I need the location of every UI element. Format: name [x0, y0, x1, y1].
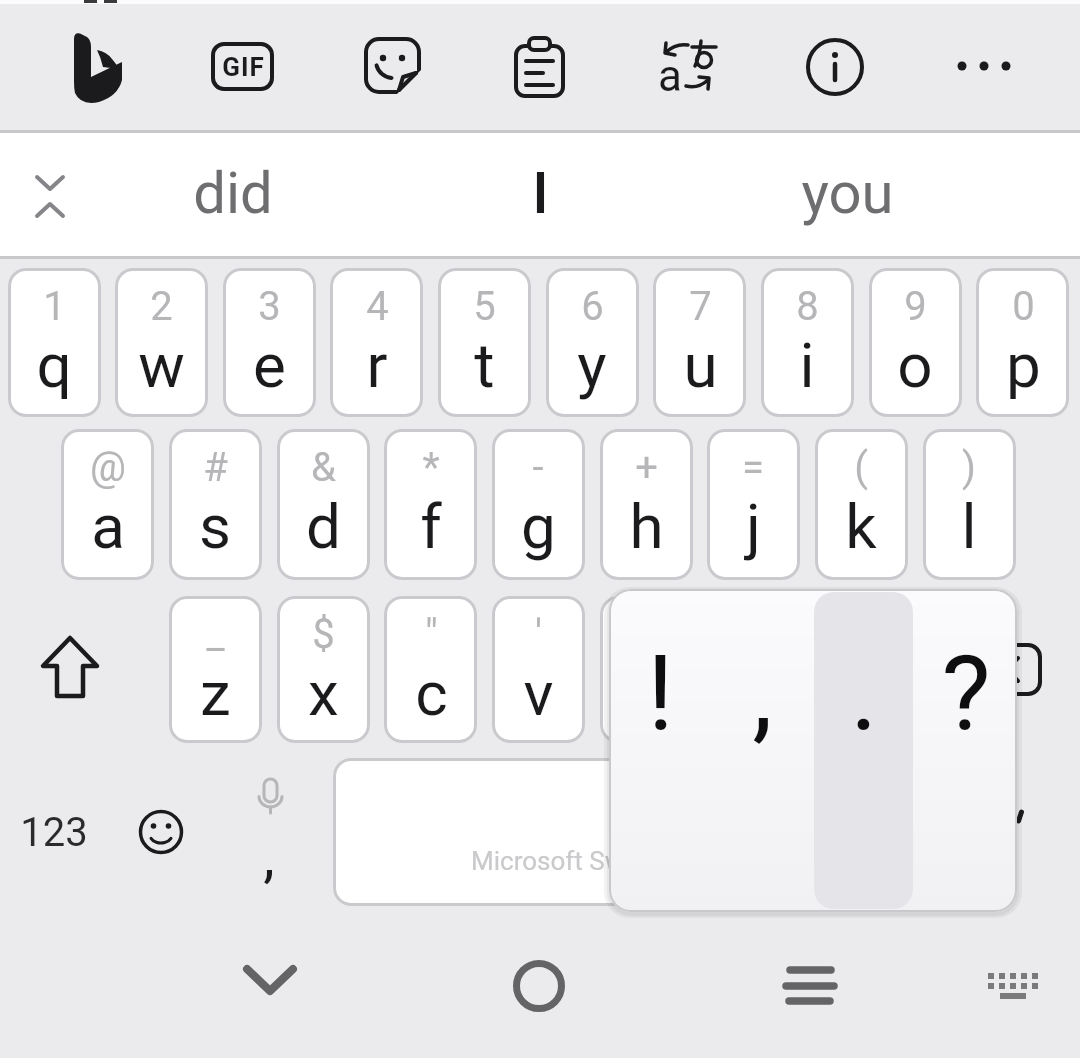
button[interactable]: [332, 14, 452, 120]
staticText: ): [962, 444, 976, 491]
button[interactable]: [185, 14, 305, 120]
staticText: =: [742, 444, 764, 491]
staticText: 3: [258, 283, 281, 330]
staticText: &: [311, 444, 336, 491]
staticText: *: [422, 444, 440, 491]
button[interactable]: [916, 592, 1016, 909]
staticText: 0: [1012, 283, 1035, 330]
staticText: @: [90, 444, 126, 491]
button[interactable]: [976, 268, 1069, 417]
staticText: ,: [752, 633, 773, 755]
button[interactable]: [480, 930, 600, 1042]
button[interactable]: [922, 14, 1042, 120]
staticText: $: [312, 611, 335, 658]
staticText: (: [854, 444, 868, 491]
button[interactable]: [169, 429, 262, 580]
staticText: s: [199, 490, 231, 563]
staticText: a: [658, 50, 682, 102]
button[interactable]: [492, 429, 585, 580]
staticText: +: [635, 444, 658, 491]
staticText: f: [420, 490, 442, 563]
staticText: -: [532, 444, 544, 491]
staticText: 5: [473, 283, 496, 330]
staticText: g: [521, 490, 556, 563]
staticText: j: [746, 490, 761, 563]
staticText: 123: [20, 809, 88, 856]
button[interactable]: [814, 592, 914, 909]
staticText: k: [845, 490, 877, 563]
button[interactable]: [775, 14, 895, 120]
staticText: 2: [150, 283, 173, 330]
button[interactable]: [869, 268, 962, 417]
staticText: u: [683, 329, 718, 402]
staticText: c: [415, 657, 448, 730]
button[interactable]: [223, 268, 316, 417]
button[interactable]: [115, 268, 208, 417]
staticText: w: [138, 329, 185, 402]
button[interactable]: [492, 596, 585, 743]
staticText: Microsoft SwiftKey: [471, 846, 691, 876]
button[interactable]: [110, 140, 360, 250]
staticText: y: [577, 329, 607, 402]
button[interactable]: [438, 268, 531, 417]
button[interactable]: [220, 758, 320, 906]
button[interactable]: [600, 429, 693, 580]
button[interactable]: [169, 596, 262, 743]
staticText: #: [203, 444, 228, 491]
staticText: 7: [689, 283, 712, 330]
staticText: you: [801, 159, 894, 227]
button[interactable]: [707, 596, 800, 743]
button[interactable]: [750, 930, 870, 1042]
button[interactable]: [707, 429, 800, 580]
staticText: p: [1006, 329, 1041, 402]
staticText: _: [206, 611, 225, 658]
staticText: l: [961, 490, 977, 563]
staticText: b: [629, 657, 664, 730]
button[interactable]: [277, 596, 370, 743]
staticText: 4: [366, 283, 389, 330]
button[interactable]: [210, 930, 330, 1042]
staticText: d: [306, 490, 341, 563]
button[interactable]: [14, 160, 86, 232]
button[interactable]: [8, 758, 108, 906]
staticText: ": [425, 611, 438, 658]
button[interactable]: [8, 268, 101, 417]
button[interactable]: [330, 268, 423, 417]
staticText: did: [193, 159, 273, 227]
staticText: t: [474, 329, 495, 402]
staticText: n: [737, 657, 772, 730]
staticText: ,: [263, 822, 275, 890]
staticText: i: [799, 329, 815, 402]
button[interactable]: [965, 940, 1061, 1036]
button[interactable]: [480, 14, 600, 120]
button[interactable]: [627, 14, 747, 120]
staticText: r: [366, 329, 388, 402]
staticText: x: [308, 657, 339, 730]
button[interactable]: [815, 429, 908, 580]
button[interactable]: [600, 596, 693, 743]
button[interactable]: [712, 592, 812, 909]
button[interactable]: [8, 596, 158, 743]
button[interactable]: [384, 429, 477, 580]
button[interactable]: [384, 596, 477, 743]
button[interactable]: [420, 140, 670, 250]
staticText: o: [897, 329, 933, 402]
button[interactable]: [725, 140, 975, 250]
button[interactable]: [761, 268, 854, 417]
button[interactable]: [113, 758, 213, 906]
staticText: q: [36, 329, 72, 402]
button[interactable]: [815, 596, 908, 743]
button[interactable]: [61, 429, 154, 580]
staticText: 8: [796, 283, 819, 330]
button[interactable]: [333, 758, 747, 906]
button[interactable]: [546, 268, 639, 417]
button[interactable]: [922, 596, 1072, 743]
button[interactable]: [923, 429, 1016, 580]
button[interactable]: [37, 14, 157, 120]
button[interactable]: [277, 429, 370, 580]
button[interactable]: [653, 268, 746, 417]
button[interactable]: [610, 592, 710, 909]
staticText: 9: [904, 283, 927, 330]
